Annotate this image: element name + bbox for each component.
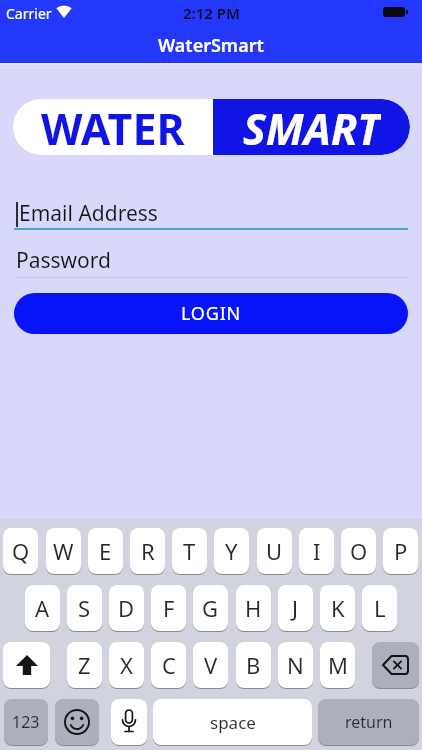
button[interactable]: J (278, 585, 313, 631)
staticText: S (78, 593, 91, 623)
button[interactable]: P (383, 528, 418, 574)
button[interactable] (3, 642, 50, 688)
staticText: space (210, 711, 256, 734)
staticText: A (35, 593, 50, 623)
button[interactable] (55, 699, 99, 745)
staticText: B (246, 650, 261, 680)
staticText: H (245, 593, 262, 623)
staticText: J (292, 593, 299, 623)
button[interactable]: 123 (4, 699, 48, 745)
staticText: W (53, 536, 74, 566)
staticText: LOGIN (181, 301, 242, 326)
button[interactable]: A (25, 585, 60, 631)
staticText: F (163, 593, 175, 623)
button[interactable]: B (236, 642, 271, 688)
staticText: Email Address (19, 199, 158, 228)
button[interactable]: N (278, 642, 313, 688)
staticText: T (183, 536, 196, 566)
button[interactable]: Q (3, 528, 38, 574)
staticText: Q (12, 536, 30, 566)
button[interactable]: E (88, 528, 123, 574)
staticText: G (202, 593, 219, 623)
button[interactable]: M (320, 642, 355, 688)
button[interactable] (372, 642, 419, 688)
staticText: V (204, 650, 218, 680)
staticText: N (287, 650, 304, 680)
staticText: K (331, 593, 345, 623)
staticText: I (313, 536, 321, 566)
staticText: L (374, 593, 386, 623)
button[interactable]: O (341, 528, 376, 574)
button[interactable]: space (153, 699, 312, 745)
staticText: Z (78, 650, 91, 680)
button[interactable]: F (151, 585, 186, 631)
staticText: Carrier (6, 4, 52, 23)
button[interactable]: Email Address (14, 196, 408, 230)
staticText: D (118, 593, 135, 623)
button[interactable]: Y (214, 528, 249, 574)
button[interactable]: I (299, 528, 334, 574)
button[interactable]: U (257, 528, 292, 574)
button[interactable]: R (130, 528, 165, 574)
staticText: R (141, 536, 155, 566)
button[interactable]: V (193, 642, 228, 688)
staticText: return (345, 711, 393, 733)
button[interactable]: X (109, 642, 144, 688)
staticText: Y (225, 536, 238, 566)
button[interactable]: W (46, 528, 81, 574)
staticText: O (350, 536, 368, 566)
staticText: X (120, 650, 133, 680)
staticText: U (266, 536, 283, 566)
button[interactable] (111, 699, 147, 745)
staticText: 2:12 PM (183, 3, 240, 23)
button[interactable]: T (172, 528, 207, 574)
button[interactable]: C (151, 642, 186, 688)
button[interactable]: Z (67, 642, 102, 688)
staticText: Password (16, 246, 111, 275)
staticText: 123 (12, 711, 40, 733)
staticText: E (99, 536, 112, 566)
button[interactable]: K (320, 585, 355, 631)
button[interactable]: D (109, 585, 144, 631)
staticText: SMART (243, 99, 381, 155)
staticText: WATER (41, 99, 185, 155)
button[interactable]: L (362, 585, 397, 631)
button[interactable]: H (236, 585, 271, 631)
staticText: WaterSmart (158, 33, 264, 58)
button[interactable]: Password (14, 246, 408, 276)
button[interactable]: LOGIN (14, 293, 408, 334)
staticText: C (162, 650, 176, 680)
button[interactable]: S (67, 585, 102, 631)
staticText: M (328, 650, 348, 680)
button[interactable]: G (193, 585, 228, 631)
staticText: P (394, 536, 408, 566)
button[interactable]: return (318, 699, 419, 745)
